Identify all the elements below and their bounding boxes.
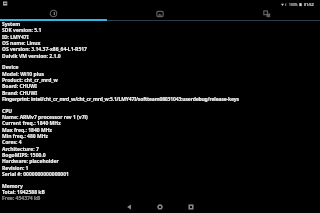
staticText: OS name: Linux [2,40,320,47]
staticText: 01:52 [304,2,314,7]
staticText: Hardware: placeholder [2,158,320,165]
staticText: Revision: 1 [2,165,320,172]
button[interactable]: System info [0,8,106,21]
staticText: Model: Wi10 plus [2,71,320,78]
staticText: Architecture: 7 [2,146,320,153]
staticText: Cores: 4 [2,139,320,146]
staticText: CPU [2,108,320,115]
staticText: Board: CHUWI [2,83,320,90]
staticText: Device [2,64,320,71]
staticText: Brand: CHUWI [2,90,320,97]
button[interactable]: Display info [106,8,213,21]
staticText: OS version: 3.14.37-x86_64-L1-R517 [2,46,320,53]
staticText: Serial #: 0000000000000001 [2,171,320,178]
staticText: Total: 1942588 kB [2,189,320,196]
staticText: Current freq.: 1840 MHz [2,120,320,127]
staticText: Dalvik VM version: 2.1.0 [2,53,320,60]
staticText: Name: ARMv7 processor rev 1 (v7l) [2,114,320,121]
button[interactable]: Home [153,200,167,213]
button[interactable]: Back [122,200,136,213]
staticText: SDK version: 5.1 [2,27,320,34]
staticText: Min freq.: 480 MHz [2,133,320,140]
staticText: System [2,21,320,28]
staticText: Product: cht_cr_mrd_w [2,77,320,84]
staticText: 100% [289,2,298,7]
button[interactable]: Recent apps [184,200,198,213]
staticText: Fingerprint: intel/cht_cr_mrd_w/cht_cr_m… [2,96,320,103]
staticText: Max freq.: 1840 MHz [2,127,320,134]
staticText: ID: LMY47I [2,34,320,41]
staticText: BogoMIPS: 1500.0 [2,152,320,159]
staticText: Free: 454374 kB [2,195,320,202]
staticText: Memory [2,183,320,190]
button[interactable]: Apps [213,8,320,21]
